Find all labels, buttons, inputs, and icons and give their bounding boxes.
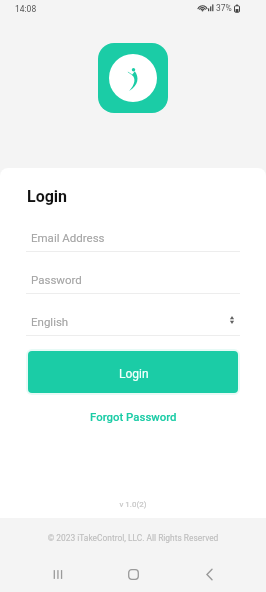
staticText: Email Address (31, 231, 105, 244)
button[interactable]: English (28, 306, 238, 336)
staticText: 37% (216, 3, 232, 13)
button[interactable]: Login (28, 351, 238, 393)
staticText: English (31, 315, 69, 328)
staticText: Password (31, 273, 82, 286)
button[interactable]: Recent apps (39, 556, 75, 592)
staticText: Login (27, 187, 68, 206)
staticText: Forgot Password (90, 410, 177, 423)
staticText: 14:08 (15, 4, 37, 14)
staticText: Login (119, 367, 149, 381)
button[interactable]: Forgot Password (0, 404, 266, 428)
button[interactable]: Home (115, 556, 151, 592)
button[interactable]: Back (191, 556, 227, 592)
button[interactable]: Password (28, 264, 238, 294)
staticText: © 2023 iTakeControl, LLC. All Rights Res… (0, 533, 266, 543)
button[interactable]: Email Address (28, 222, 238, 252)
staticText: v 1.0(2) (0, 500, 266, 509)
